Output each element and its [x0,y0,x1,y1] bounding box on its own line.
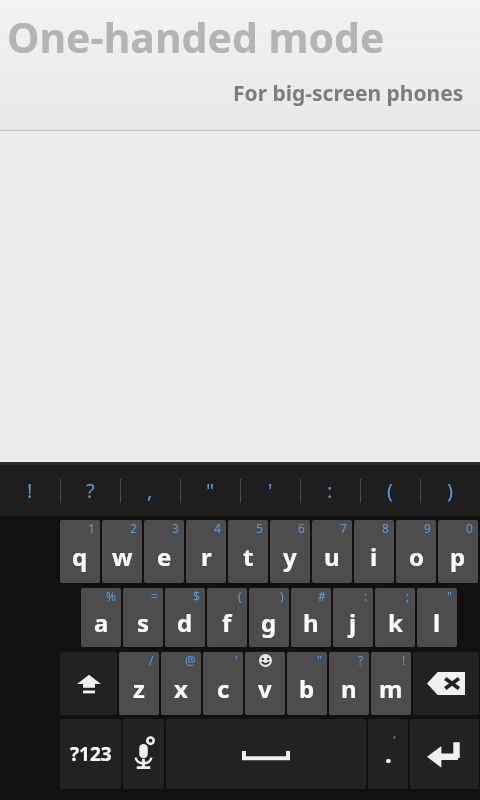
staticText: ? [86,477,95,504]
button[interactable]: ' [240,465,300,516]
staticText: 0 [466,520,473,536]
button[interactable]: , [120,465,180,516]
staticText: c [217,672,230,705]
staticText: $ [193,588,200,604]
staticText: d [177,606,193,639]
button[interactable]: m [371,652,411,715]
staticText: q [72,540,88,573]
staticText: ) [280,588,284,604]
button[interactable]: k [375,588,415,647]
button[interactable]: ) [420,465,480,516]
staticText: ( [387,477,393,504]
button[interactable]: n [329,652,369,715]
button[interactable]: Enter [410,719,479,789]
staticText: % [106,588,116,604]
staticText: l [433,606,441,639]
staticText: r [201,540,212,573]
button[interactable]: ( [360,465,420,516]
staticText: ! [402,652,406,668]
staticText: , [147,477,153,504]
button[interactable]: Voice input [123,719,164,789]
staticText: 6 [298,520,305,536]
staticText: 4 [214,520,221,536]
staticText: ' [235,652,238,668]
staticText: j [349,606,357,639]
staticText: ; [406,588,410,604]
staticText: = [151,588,158,604]
button[interactable]: c [203,652,243,715]
staticText: " [447,588,452,604]
staticText: h [303,606,319,639]
staticText: b [299,672,315,705]
staticText: / [149,652,154,668]
staticText: w [112,540,133,573]
staticText: " [206,477,215,504]
staticText: z [133,672,145,705]
staticText: ? [358,652,364,668]
button[interactable]: ! [0,465,60,516]
button[interactable]: o [396,520,436,583]
staticText: k [388,606,403,639]
staticText: v [258,672,272,705]
button[interactable]: l [417,588,457,647]
staticText: a [94,606,109,639]
staticText: g [261,606,277,639]
staticText: 8 [382,520,389,536]
button[interactable]: f [207,588,247,647]
staticText: ' [268,477,273,504]
staticText: ! [27,477,33,504]
button[interactable]: Backspace [413,652,479,715]
button[interactable]: e [144,520,184,583]
staticText: @ [185,652,196,668]
button[interactable]: r [186,520,226,583]
button[interactable]: g [249,588,289,647]
button[interactable]: a [81,588,121,647]
button[interactable]: Shift [60,652,117,715]
button[interactable]: t [228,520,268,583]
staticText: # [318,588,326,604]
button[interactable]: . [368,719,408,789]
button[interactable]: j [333,588,373,647]
button[interactable]: d [165,588,205,647]
button[interactable]: v [245,652,285,715]
staticText: : [364,588,368,604]
staticText: f [222,606,232,639]
staticText: 7 [340,520,347,536]
staticText: e [157,540,172,573]
staticText: For big-screen phones [233,79,464,108]
staticText: 9 [424,520,431,536]
staticText: o [409,540,424,573]
staticText: x [174,672,188,705]
staticText: y [283,540,297,573]
button[interactable]: ?123 [60,719,121,789]
staticText: ) [447,477,453,504]
button[interactable]: z [119,652,159,715]
button[interactable]: x [161,652,201,715]
staticText: s [137,606,150,639]
button[interactable]: ? [60,465,120,516]
button[interactable]: y [270,520,310,583]
staticText: 3 [172,520,179,536]
button[interactable]: Space [166,719,366,789]
button[interactable]: s [123,588,163,647]
button[interactable]: p [438,520,478,583]
staticText: n [341,672,357,705]
staticText: ?123 [70,741,112,767]
staticText: . [385,737,392,770]
button[interactable]: b [287,652,327,715]
button[interactable]: h [291,588,331,647]
button[interactable]: w [102,520,142,583]
staticText: i [370,540,378,573]
button[interactable]: q [60,520,100,583]
button[interactable]: u [312,520,352,583]
staticText: u [324,540,340,573]
button[interactable]: : [300,465,360,516]
staticText: m [379,672,403,705]
staticText: : [327,477,333,504]
staticText: 2 [130,520,137,536]
staticText: One-handed mode [7,9,385,65]
staticText: ( [238,588,242,604]
button[interactable]: i [354,520,394,583]
button[interactable]: " [180,465,240,516]
staticText: , [393,724,397,740]
